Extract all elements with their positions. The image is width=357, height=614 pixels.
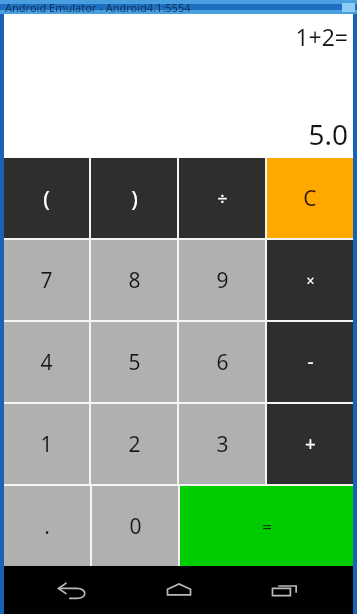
staticText: ) [131,183,138,213]
staticText: 1+2= [295,21,348,52]
button[interactable]: 1 [4,404,89,484]
staticText: ÷ [217,186,228,211]
button[interactable]: 0 [92,486,178,566]
staticText: . [44,512,50,541]
staticText: - [307,349,314,375]
button[interactable]: ( [4,158,89,238]
staticText: 2 [128,430,141,459]
button[interactable]: 6 [179,322,265,402]
staticText: 5.0 [308,115,348,153]
button[interactable]: ÷ [179,158,265,238]
staticText: 4 [40,348,53,377]
button[interactable]: - [267,322,353,402]
button[interactable]: C [267,158,353,238]
button[interactable]: 5 [91,322,177,402]
button[interactable]: 3 [179,404,265,484]
staticText: × [306,271,315,290]
button[interactable]: × [267,240,353,320]
button[interactable]: + [267,404,353,484]
button[interactable]: 7 [4,240,89,320]
staticText: 3 [216,430,229,459]
button[interactable]: Recent apps [248,567,320,613]
staticText: Android Emulator - Android4.1:5554 [5,0,191,14]
button[interactable]: Home [143,567,215,613]
staticText: 1 [40,430,53,459]
button[interactable]: = [180,486,353,566]
staticText: ( [43,183,50,213]
staticText: 8 [128,266,141,295]
staticText: = [262,515,272,538]
staticText: C [303,184,317,213]
staticText: 7 [40,266,53,295]
button[interactable]: Back [37,567,109,613]
staticText: 9 [216,266,229,295]
button[interactable]: 2 [91,404,177,484]
button[interactable]: 9 [179,240,265,320]
staticText: 6 [216,348,229,377]
button[interactable]: 8 [91,240,177,320]
staticText: 5 [128,348,141,377]
button[interactable]: 4 [4,322,89,402]
button[interactable]: . [4,486,90,566]
staticText: 0 [129,512,142,541]
staticText: + [305,431,316,457]
button[interactable]: ) [91,158,177,238]
